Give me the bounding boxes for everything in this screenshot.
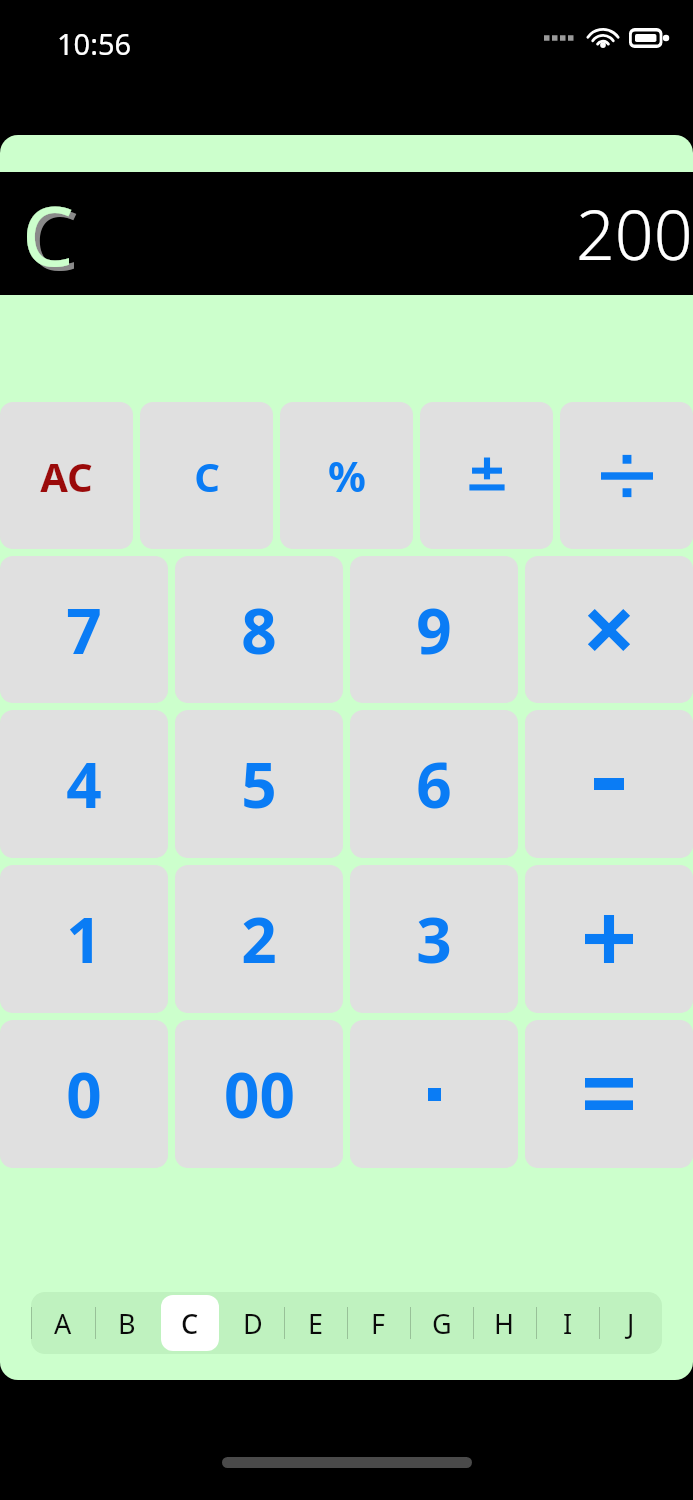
button[interactable]: Clear [140, 402, 273, 549]
button[interactable]: 9 [350, 556, 518, 703]
button[interactable]: H [473, 1292, 536, 1354]
button[interactable]: 5 [175, 710, 343, 858]
staticText: 200 [576, 187, 693, 280]
button[interactable]: B [95, 1292, 158, 1354]
staticText: 5 [241, 742, 277, 826]
button[interactable]: 6 [350, 710, 518, 858]
button[interactable]: C [158, 1292, 221, 1354]
staticText: 0 [66, 1052, 102, 1136]
button[interactable]: Equals [525, 1020, 693, 1168]
button[interactable]: 0 [0, 1020, 168, 1168]
button[interactable]: Percent [280, 402, 413, 549]
button[interactable]: G [410, 1292, 473, 1354]
staticText: F [371, 1305, 386, 1342]
staticText: 3 [416, 897, 452, 981]
button[interactable]: 8 [175, 556, 343, 703]
staticText: D [243, 1305, 263, 1342]
staticText: B [118, 1305, 136, 1342]
button[interactable]: 1 [0, 865, 168, 1013]
button[interactable]: Divide [560, 402, 693, 549]
button[interactable]: F [347, 1292, 410, 1354]
button[interactable]: D [221, 1292, 284, 1354]
staticText: C [181, 1305, 199, 1342]
button[interactable]: Multiply [525, 556, 693, 703]
staticText: 2 [241, 897, 277, 981]
button[interactable]: Minus [525, 710, 693, 858]
button[interactable]: I [536, 1292, 599, 1354]
staticText: C [22, 178, 74, 290]
button[interactable]: Double zero [175, 1020, 343, 1168]
button[interactable]: 4 [0, 710, 168, 858]
staticText: 4 [66, 742, 102, 826]
button[interactable]: 7 [0, 556, 168, 703]
staticText: G [432, 1305, 452, 1342]
staticText: J [627, 1305, 635, 1342]
button[interactable]: A [31, 1292, 95, 1354]
staticText: 00 [224, 1052, 295, 1136]
staticText: 9 [416, 588, 452, 672]
button[interactable]: E [284, 1292, 347, 1354]
staticText: C [194, 449, 220, 503]
button[interactable]: Plus [525, 865, 693, 1013]
button[interactable]: J [599, 1292, 662, 1354]
button[interactable]: Plus minus [420, 402, 553, 549]
button[interactable]: 2 [175, 865, 343, 1013]
staticText: 10:56 [57, 24, 132, 63]
staticText: 7 [66, 588, 102, 672]
staticText: E [308, 1305, 324, 1342]
button[interactable]: Decimal point [350, 1020, 518, 1168]
staticText: C [27, 182, 79, 294]
staticText: A [54, 1305, 72, 1342]
staticText: % [328, 447, 366, 504]
staticText: AC [40, 449, 93, 503]
staticText: 6 [416, 742, 452, 826]
staticText: 8 [241, 588, 277, 672]
staticText: 1 [66, 897, 102, 981]
staticText: H [494, 1305, 515, 1342]
button[interactable]: All clear [0, 402, 133, 549]
staticText: I [563, 1305, 573, 1342]
button[interactable]: 3 [350, 865, 518, 1013]
